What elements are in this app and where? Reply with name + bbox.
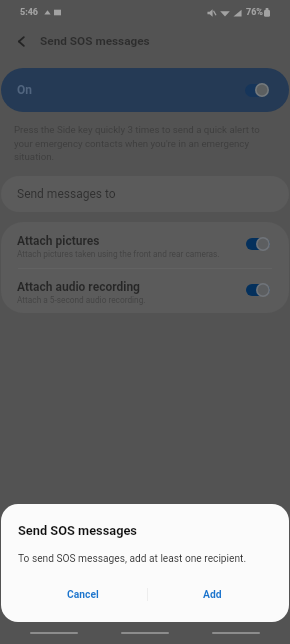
button[interactable] <box>246 283 270 297</box>
staticText: Send messages to <box>17 187 116 201</box>
staticText: On <box>17 83 33 97</box>
button[interactable]: Send messages to <box>1 176 289 212</box>
staticText: Send SOS messages <box>18 523 137 538</box>
button[interactable]: Attach pictures <box>1 222 289 268</box>
button[interactable]: On <box>1 68 289 112</box>
staticText: Add <box>203 588 222 600</box>
staticText: 5:46 <box>20 7 39 18</box>
staticText: To send SOS messages, add at least one r… <box>18 553 247 565</box>
button[interactable]: Add <box>148 580 276 608</box>
staticText: Attach pictures <box>17 234 100 248</box>
button[interactable] <box>245 83 269 97</box>
staticText: Cancel <box>67 588 99 600</box>
button[interactable] <box>246 237 270 251</box>
staticText: 76% <box>246 7 263 18</box>
staticText: Attach pictures taken using the front an… <box>17 249 220 259</box>
button[interactable]: Back <box>8 28 34 54</box>
button[interactable]: Attach audio recording <box>1 269 289 313</box>
staticText: Send SOS messages <box>40 34 150 48</box>
staticText: Press the Side key quickly 3 times to se… <box>14 124 263 162</box>
staticText: Attach a 5-second audio recording. <box>17 295 146 305</box>
button[interactable]: Cancel <box>19 580 147 608</box>
staticText: Attach audio recording <box>17 280 140 294</box>
